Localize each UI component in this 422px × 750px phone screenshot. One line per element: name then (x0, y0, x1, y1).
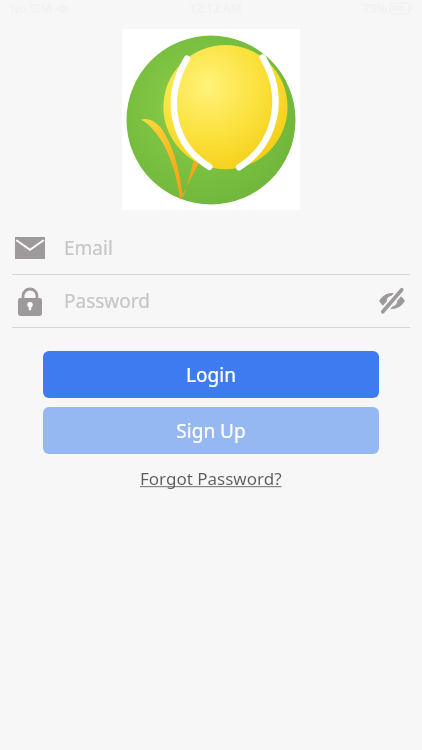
button[interactable]: Email (0, 222, 422, 274)
button[interactable]: Forgot Password? (132, 463, 290, 494)
button[interactable]: Password (0, 275, 422, 327)
staticText: Sign Up (176, 418, 246, 444)
button[interactable]: Login (43, 351, 379, 398)
staticText: Email (64, 235, 113, 261)
button[interactable]: Sign Up (43, 407, 379, 454)
other: Password (14, 286, 46, 316)
other: Email (14, 237, 46, 259)
button[interactable]: Show password (370, 279, 414, 323)
staticText: Forgot Password? (140, 467, 282, 490)
staticText: Login (186, 362, 236, 388)
staticText: Password (64, 288, 150, 314)
